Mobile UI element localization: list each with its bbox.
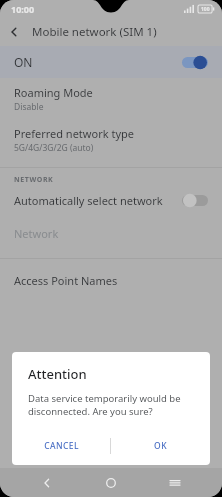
button[interactable]: Back (0, 18, 28, 46)
staticText: Disable (14, 101, 44, 113)
staticText: 100 (201, 6, 210, 13)
staticText: Roaming Mode (14, 85, 93, 100)
staticText: 10:00 (11, 3, 35, 15)
button[interactable]: Preferred network type (0, 115, 222, 156)
button[interactable]: Network (0, 214, 222, 243)
staticText: NETWORK (14, 175, 54, 185)
button[interactable]: Roaming Mode (0, 78, 222, 115)
staticText: Attention (28, 365, 87, 383)
button[interactable]: OK (111, 431, 210, 461)
button[interactable]: Recent apps (158, 468, 192, 497)
button[interactable]: Back (30, 468, 64, 497)
staticText: ON (14, 54, 33, 70)
staticText: Access Point Names (14, 273, 118, 288)
button[interactable]: Access Point Names (0, 270, 222, 291)
staticText: Automatically select network (14, 193, 163, 208)
button[interactable]: CANCEL (12, 431, 110, 461)
staticText: OK (154, 440, 167, 452)
staticText: CANCEL (44, 440, 79, 452)
button[interactable]: Home (94, 468, 128, 497)
button[interactable]: ON (0, 46, 222, 78)
staticText: Data service temporarily would be discon… (28, 392, 192, 418)
staticText: Preferred network type (14, 126, 134, 141)
staticText: Mobile network (SIM 1) (32, 24, 157, 40)
staticText: Network (14, 226, 59, 241)
button[interactable]: Automatically select network (0, 186, 222, 214)
staticText: 5G/4G/3G/2G (auto) (14, 142, 94, 154)
